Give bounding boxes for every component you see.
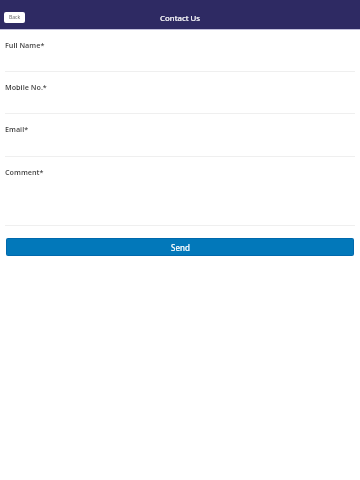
staticText: Comment* [5,167,44,177]
button[interactable]: Comment* [0,157,360,226]
staticText: Full Name* [5,40,45,50]
staticText: Email* [5,124,29,134]
button[interactable]: Send [7,239,353,255]
button[interactable]: Full Name* [0,30,360,72]
button[interactable]: Back [4,12,25,23]
staticText: Send [171,242,190,253]
button[interactable]: Email* [0,114,360,157]
staticText: Mobile No.* [5,82,47,92]
button[interactable]: Mobile No.* [0,72,360,114]
staticText: Back [9,14,21,21]
staticText: Contact Us [160,13,201,24]
